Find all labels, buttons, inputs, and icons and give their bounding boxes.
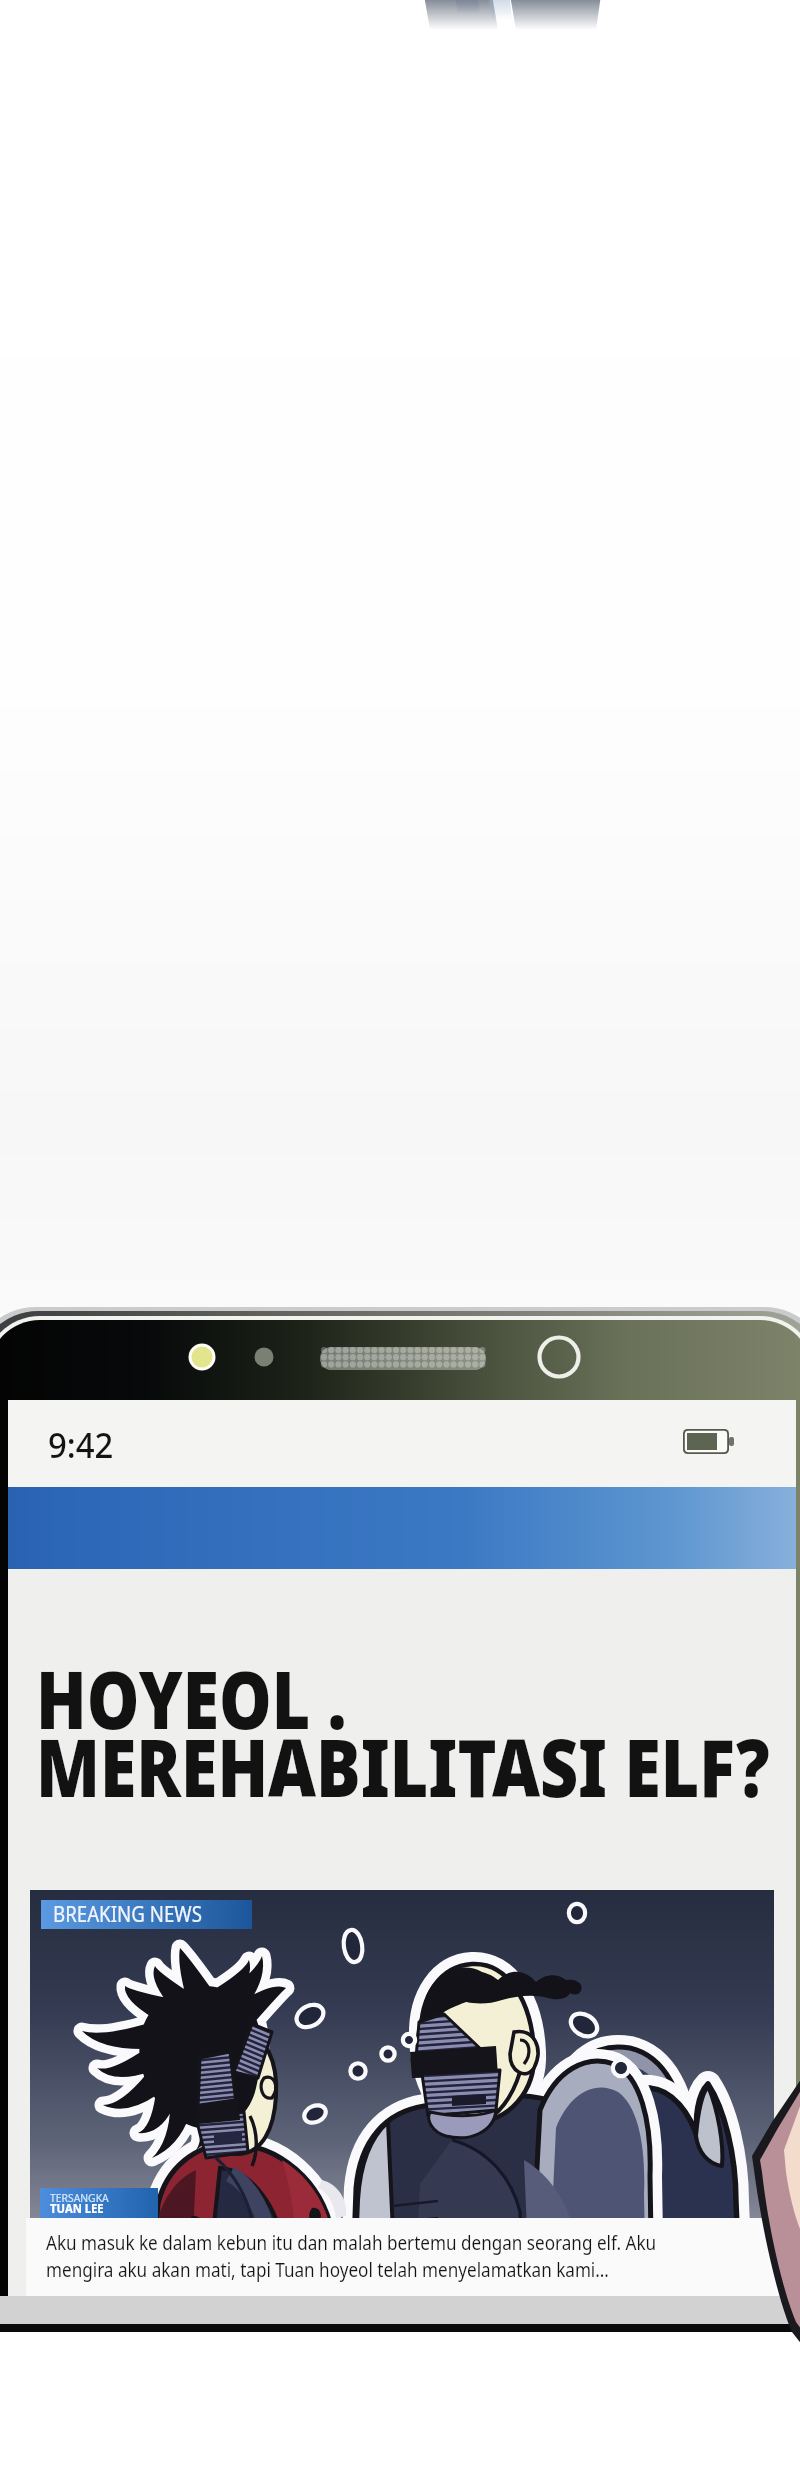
staticText: mengira aku akan mati, tapi Tuan hoyeol … xyxy=(46,2256,609,2283)
staticText: TUAN LEE xyxy=(50,2200,104,2217)
staticText: TERSANGKA xyxy=(50,2190,109,2206)
staticText: Aku masuk ke dalam kebun itu dan malah b… xyxy=(46,2229,656,2256)
staticText: 9:42 xyxy=(48,1421,114,1469)
staticText: BREAKING NEWS xyxy=(53,1900,202,1929)
button[interactable]: 9:42 xyxy=(48,1421,114,1469)
